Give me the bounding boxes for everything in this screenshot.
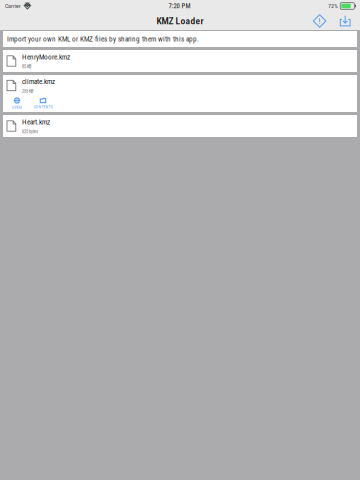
staticText: 72% bbox=[328, 2, 338, 10]
staticText: HenryMoore.kmz bbox=[22, 53, 70, 61]
staticText: 255 KB bbox=[22, 88, 33, 94]
button[interactable]: HenryMoore.kmz bbox=[3, 50, 357, 72]
button[interactable]: Import file bbox=[332, 12, 358, 30]
staticText: climate.kmz bbox=[22, 77, 55, 86]
staticText: CONTENTS bbox=[33, 104, 52, 109]
staticText: Carrier bbox=[5, 2, 21, 10]
staticText: 625 bytes bbox=[22, 129, 38, 134]
staticText: KMZ Loader bbox=[156, 15, 203, 27]
button[interactable]: Heart.kmz bbox=[3, 115, 357, 137]
staticText: Heart.kmz bbox=[22, 118, 50, 126]
staticText: 7:20 PM bbox=[168, 2, 190, 10]
staticText: 85 KB bbox=[22, 64, 31, 69]
button[interactable]: OPEN bbox=[6, 96, 28, 111]
button[interactable]: About bbox=[307, 12, 332, 30]
staticText: OPEN bbox=[12, 105, 22, 110]
button[interactable]: climate.kmz bbox=[3, 75, 357, 96]
staticText: Import your own KML or KMZ files by shar… bbox=[7, 35, 199, 43]
button[interactable]: CONTENTS bbox=[32, 96, 54, 111]
